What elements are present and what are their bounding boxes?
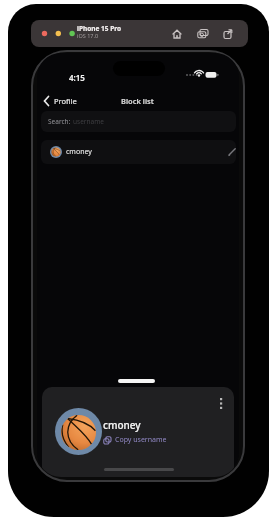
staticText: username — [73, 117, 104, 126]
staticText: Search: — [48, 117, 73, 126]
staticText: Profile — [54, 96, 77, 106]
button[interactable] — [227, 147, 237, 157]
button[interactable] — [215, 396, 227, 414]
button[interactable]: Search: — [41, 111, 236, 132]
staticText: Block list — [121, 96, 154, 106]
button[interactable] — [223, 29, 233, 39]
button[interactable]: Profile — [43, 94, 103, 108]
staticText: Copy username — [115, 435, 167, 445]
staticText: cmoney — [66, 147, 92, 157]
staticText: iOS 17.0 — [77, 32, 99, 39]
button[interactable] — [172, 29, 182, 39]
staticText: 4:15 — [69, 72, 85, 83]
button[interactable]: cmoney — [41, 140, 236, 164]
staticText: cmoney — [103, 418, 141, 432]
button[interactable]: Copy username — [103, 435, 167, 445]
button[interactable] — [197, 29, 209, 39]
staticText: iPhone 15 Pro — [77, 24, 122, 33]
